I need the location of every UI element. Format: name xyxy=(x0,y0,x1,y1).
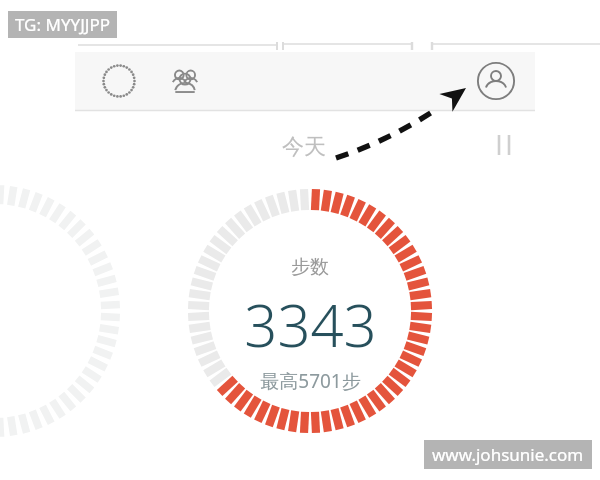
staticText: 今天 xyxy=(282,133,326,161)
button[interactable]: Profile xyxy=(469,54,523,108)
button[interactable]: Pause xyxy=(487,128,521,162)
staticText: 3343 xyxy=(244,285,377,364)
staticText: TG: MYYJJPP xyxy=(15,13,110,36)
button[interactable]: Activity xyxy=(93,55,145,107)
staticText: www.johsunie.com xyxy=(432,443,584,466)
button[interactable]: 步数 xyxy=(200,255,420,394)
staticText: 步数 xyxy=(291,255,329,279)
staticText: 最高5701步 xyxy=(260,368,361,394)
button[interactable]: 今天 xyxy=(282,133,326,161)
button[interactable]: Friends xyxy=(159,55,211,107)
